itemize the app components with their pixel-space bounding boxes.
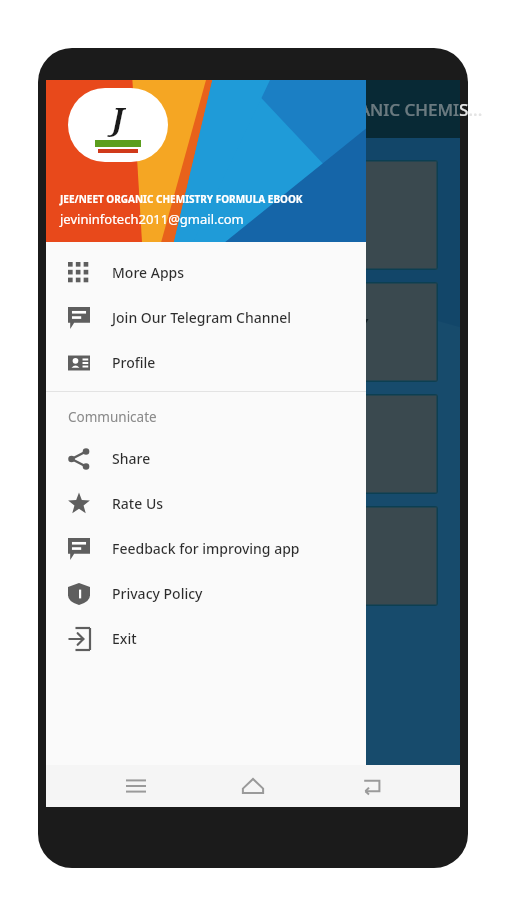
other: Share xyxy=(46,436,112,481)
button[interactable]: Back xyxy=(343,765,399,807)
button[interactable]: JEE/NEET ORGANIC CHEMISTRY xyxy=(70,282,438,382)
staticText: More Apps xyxy=(112,263,185,282)
other: Feedback xyxy=(46,526,112,571)
staticText: Privacy Policy xyxy=(112,584,203,603)
button[interactable]: Recents xyxy=(108,765,164,807)
button[interactable]: Home xyxy=(225,765,281,807)
button[interactable]: Feedback xyxy=(46,526,366,571)
other: Exit xyxy=(46,616,112,661)
staticText: JEE/NEET ORGANIC CHEMIS... xyxy=(246,98,483,121)
button[interactable]: MORE APPS xyxy=(70,394,438,494)
other: Privacy Policy xyxy=(46,571,112,616)
button[interactable]: Profile xyxy=(46,340,366,385)
staticText: Share xyxy=(112,449,151,468)
button[interactable]: Rate Us xyxy=(46,481,366,526)
other: Profile xyxy=(46,340,112,385)
staticText: Feedback for improving app xyxy=(112,539,300,558)
other: More Apps xyxy=(46,250,112,295)
button[interactable] xyxy=(46,80,460,807)
other: Join Our Telegram Channel xyxy=(46,295,112,340)
button[interactable] xyxy=(70,160,438,270)
button[interactable]: Join Our Telegram Channel xyxy=(46,295,366,340)
button[interactable]: Privacy Policy xyxy=(46,571,366,616)
button[interactable] xyxy=(70,506,438,606)
staticText: Rate Us xyxy=(112,494,164,513)
button[interactable]: Exit xyxy=(46,616,366,661)
staticText: Communicate xyxy=(68,408,157,426)
other: Rate Us xyxy=(46,481,112,526)
button[interactable]: More Apps xyxy=(46,250,366,295)
staticText: Profile xyxy=(112,353,156,372)
staticText: Exit xyxy=(112,629,137,648)
staticText: jevininfotech2011@gmail.com xyxy=(60,210,244,228)
staticText: JEE/NEET ORGANIC CHEMISTRY xyxy=(139,313,369,333)
staticText: J xyxy=(112,98,125,139)
button[interactable]: Share xyxy=(46,436,366,481)
staticText: Join Our Telegram Channel xyxy=(112,308,292,327)
staticText: JEE/NEET ORGANIC CHEMISTRY FORMULA EBOOK xyxy=(60,192,303,206)
